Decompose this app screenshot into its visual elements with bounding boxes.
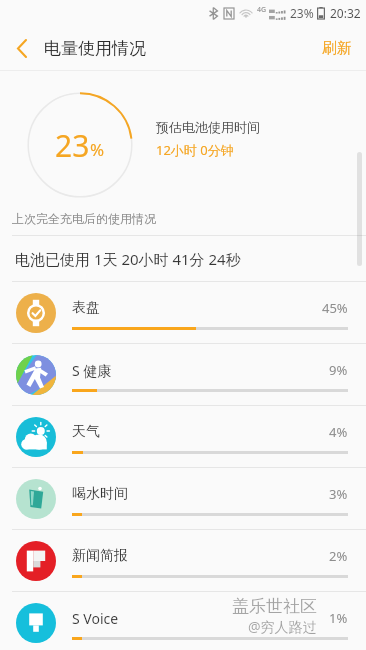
staticText: S Voice [72,609,119,628]
button[interactable]: 电池已使用 1天 20小时 41分 24秒 [0,236,366,281]
staticText: S 健康 [72,361,112,380]
staticText: 2% [329,547,348,565]
button[interactable]: Back [0,26,44,70]
staticText: 盖乐世社区 [232,596,317,617]
staticText: 20:32 [330,5,361,21]
staticText: 23 [55,125,90,166]
staticText: 刷新 [322,39,352,58]
staticText: 电量使用情况 [44,38,146,59]
staticText: 23% [290,5,314,21]
button[interactable]: S 健康 [0,344,366,406]
staticText: 电池已使用 1天 20小时 41分 24秒 [15,249,241,269]
button[interactable]: 刷新 [308,28,366,69]
staticText: 1% [329,609,348,627]
staticText: 45% [322,299,348,317]
button[interactable]: 喝水时间 [0,468,366,530]
staticText: 3% [329,485,348,503]
button[interactable]: S Voice [0,592,366,650]
staticText: 9% [329,361,348,379]
staticText: 4G [257,5,267,15]
button[interactable]: 天气 [0,406,366,468]
staticText: 新闻简报 [72,547,128,565]
button[interactable]: 新闻简报 [0,530,366,592]
staticText: 12小时 0分钟 [156,141,234,159]
button[interactable]: 表盘 [0,282,366,344]
staticText: 上次完全充电后的使用情况 [12,211,156,226]
staticText: 喝水时间 [72,485,128,503]
staticText: 预估电池使用时间 [156,119,260,135]
staticText: @穷人路过 [248,617,317,636]
staticText: 4% [329,423,348,441]
staticText: 表盘 [72,299,100,317]
staticText: % [90,138,105,161]
staticText: 天气 [72,423,100,441]
